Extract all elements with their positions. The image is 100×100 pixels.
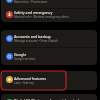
- staticText: Advanced features: [14, 76, 47, 81]
- button[interactable]: Safety and emergency: [1, 8, 97, 22]
- staticText: Accounts and backup: [14, 34, 51, 39]
- staticText: Labs • Side key: [14, 81, 34, 85]
- button[interactable]: Accounts and backup: [1, 30, 97, 47]
- staticText: Manage accounts • Smart Switch: [14, 39, 59, 43]
- other: Advanced features focused: [1, 71, 66, 90]
- button[interactable]: Digital Wellbeing and parental controls: [1, 94, 97, 100]
- staticText: Google: [14, 52, 27, 57]
- button[interactable]: Google: [1, 47, 97, 64]
- staticText: Safety and emergency: [14, 10, 53, 15]
- staticText: Google services: [14, 57, 36, 61]
- button[interactable]: Advanced features: [1, 71, 97, 90]
- staticText: Medical info • Wireless emergency alerts: [14, 15, 69, 19]
- staticText: Digital Wellbeing and parental controls: [14, 98, 81, 100]
- button[interactable]: Security and privacy: [1, 0, 97, 8]
- staticText: Biometrics • Permissions: [14, 0, 48, 4]
